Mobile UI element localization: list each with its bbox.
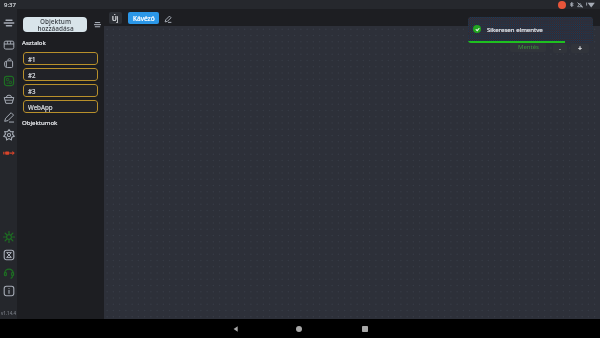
staticText: + <box>578 44 583 53</box>
staticText: #3 <box>28 87 36 95</box>
staticText: 9:37 <box>4 1 16 9</box>
staticText: Objektum hozzáadása <box>37 17 74 32</box>
staticText: v1.14.4 <box>1 310 16 316</box>
button[interactable]: Új <box>109 12 122 24</box>
button[interactable]: Edit <box>0 108 17 126</box>
staticText: Mentés <box>518 43 539 51</box>
button[interactable]: Objektum hozzáadása <box>23 17 87 32</box>
staticText: Új <box>112 14 119 23</box>
button[interactable]: Kávézó <box>128 12 159 24</box>
button[interactable]: Home <box>285 319 313 338</box>
staticText: #1 <box>28 55 36 63</box>
staticText: Kávézó <box>133 14 155 23</box>
button[interactable]: Zoom in <box>571 44 589 53</box>
button[interactable]: Products <box>0 54 17 72</box>
button[interactable]: Status <box>0 228 17 246</box>
staticText: WebApp <box>28 103 53 111</box>
button[interactable]: Settings <box>0 126 17 144</box>
button[interactable]: WebApp <box>23 100 98 113</box>
staticText: Objektumok <box>22 118 58 126</box>
button[interactable]: Menu <box>0 14 17 32</box>
button[interactable]: #1 <box>23 52 98 65</box>
staticText: #2 <box>28 71 36 79</box>
button[interactable]: Pending <box>0 246 17 264</box>
button[interactable]: Orders <box>0 90 17 108</box>
button[interactable]: Sort <box>93 20 102 29</box>
staticText: Asztalok <box>22 38 46 46</box>
button[interactable]: Zoom out <box>553 44 567 53</box>
button[interactable]: #3 <box>23 84 98 97</box>
button[interactable]: Mentés <box>510 42 546 52</box>
button[interactable]: Support <box>0 264 17 282</box>
staticText: Sikeresen elmentve <box>487 25 543 33</box>
button[interactable]: Info <box>0 282 17 300</box>
button[interactable]: Edit tab <box>162 13 173 24</box>
button[interactable]: Store <box>0 36 17 54</box>
button[interactable]: Scan <box>0 72 17 90</box>
button[interactable]: #2 <box>23 68 98 81</box>
button[interactable]: Back <box>222 319 250 338</box>
button[interactable]: Recents <box>351 319 379 338</box>
button[interactable]: Logout <box>0 144 17 162</box>
staticText: - <box>559 45 561 53</box>
